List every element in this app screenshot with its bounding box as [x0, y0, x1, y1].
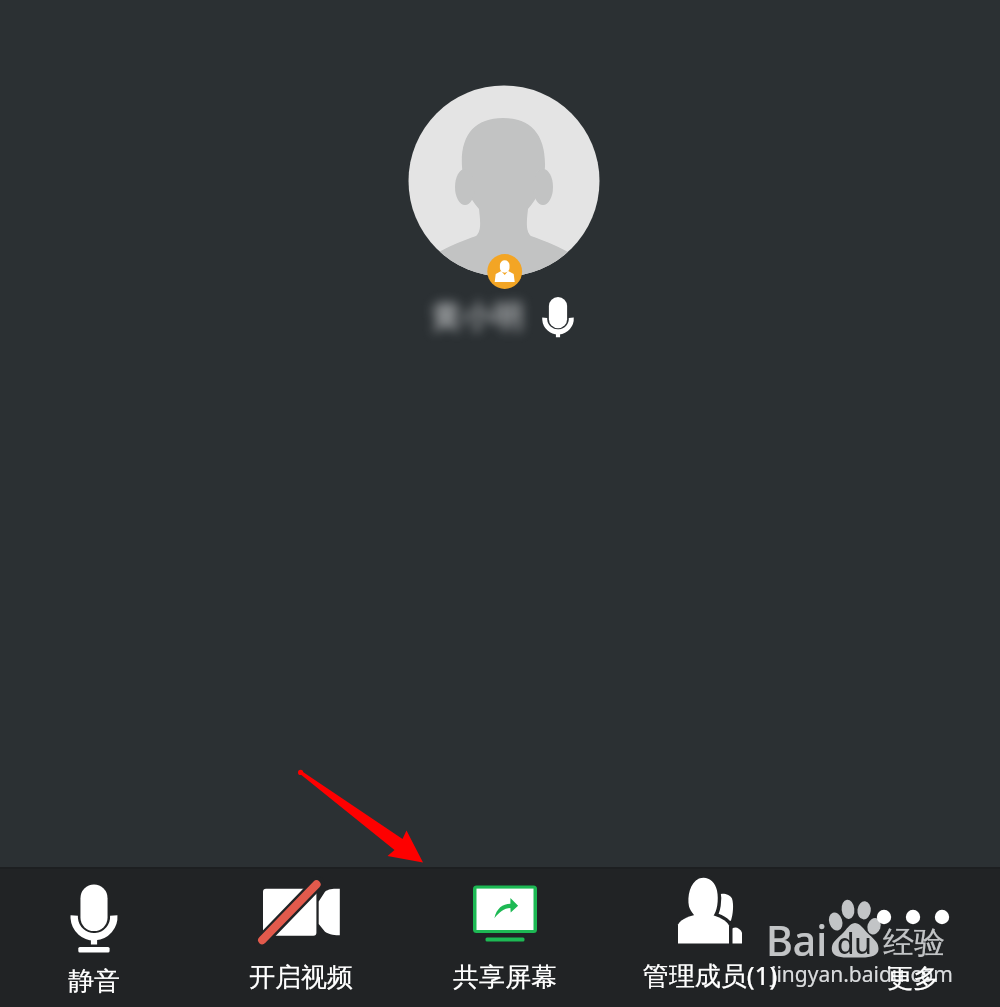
staticText: du: [837, 924, 872, 962]
staticText: 管理成员(1): [610, 957, 810, 993]
staticText: 更多: [813, 962, 1000, 995]
staticText: Bai: [766, 912, 828, 968]
staticText: 黄小明: [431, 297, 524, 336]
button[interactable]: Mute: [0, 868, 194, 1007]
staticText: 静音: [0, 965, 194, 998]
button[interactable]: Manage participants: [610, 868, 810, 1007]
staticText: 共享屏幕: [405, 961, 605, 994]
button[interactable]: Start video: [201, 868, 401, 1007]
button[interactable]: More: [813, 868, 1000, 1007]
button[interactable]: Share screen: [405, 868, 605, 1007]
staticText: jingyan.baidu.com: [771, 960, 953, 989]
staticText: 经验: [883, 923, 945, 962]
staticText: 开启视频: [201, 961, 401, 994]
